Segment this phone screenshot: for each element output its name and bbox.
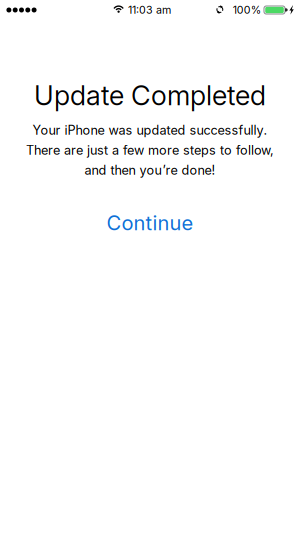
button[interactable]: Continue (106, 211, 193, 235)
staticText: 100% (233, 3, 261, 16)
staticText: Your iPhone was updated successfully. (32, 123, 267, 138)
staticText: Update Completed (34, 79, 266, 112)
staticText: 11:03 am (128, 3, 171, 16)
staticText: There are just a few more steps to follo… (26, 143, 274, 158)
staticText: and then you’re done! (84, 163, 215, 178)
staticText: Continue (106, 211, 193, 235)
